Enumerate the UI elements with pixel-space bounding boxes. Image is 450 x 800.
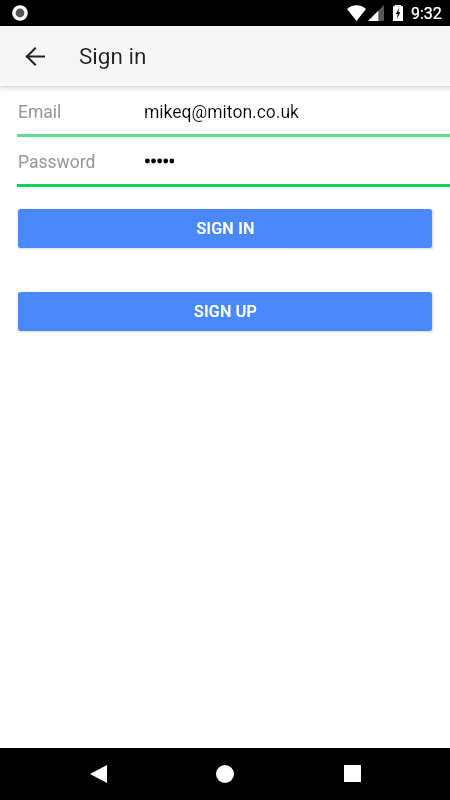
button[interactable]: SIGN IN [18, 209, 432, 248]
staticText: 9:32 [411, 4, 442, 23]
button[interactable]: SIGN UP [18, 292, 432, 331]
staticText: mikeq@miton.co.uk [144, 102, 299, 123]
button[interactable]: Recent apps [328, 749, 376, 797]
button[interactable]: Password field [0, 149, 450, 187]
button[interactable]: Email field [0, 99, 450, 137]
button[interactable]: Home [201, 750, 249, 798]
staticText: SIGN UP [194, 302, 257, 321]
staticText: Sign in [79, 43, 147, 69]
button[interactable]: Back [74, 750, 122, 798]
button[interactable]: Navigate up [11, 32, 59, 80]
staticText: SIGN IN [196, 219, 255, 238]
staticText: Password [18, 152, 96, 173]
staticText: Email [18, 102, 62, 123]
